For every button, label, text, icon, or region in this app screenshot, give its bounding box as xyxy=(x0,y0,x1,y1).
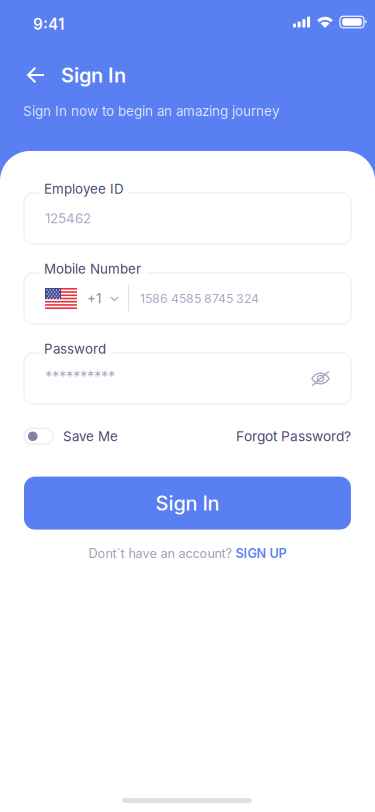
staticText: 9:41 xyxy=(33,15,64,34)
staticText: Password xyxy=(44,341,106,357)
staticText: +1 xyxy=(87,290,101,306)
staticText: Sign In xyxy=(61,63,126,87)
button[interactable]: Save Me xyxy=(24,428,118,444)
staticText: Save Me xyxy=(63,428,118,444)
staticText: SIGN UP xyxy=(235,546,286,561)
staticText: ********** xyxy=(45,368,115,385)
staticText: Mobile Number xyxy=(44,261,141,277)
staticText: Sign In now to begin an amazing journey xyxy=(23,103,279,119)
staticText: Sign In xyxy=(155,491,219,515)
button[interactable]: Sign In xyxy=(24,477,351,530)
button[interactable]: Back xyxy=(21,60,51,90)
button[interactable]: Show password xyxy=(311,370,330,387)
staticText: Dont`t have an account? xyxy=(88,546,231,561)
staticText: 1586 4585 8745 324 xyxy=(140,291,259,306)
staticText: 125462 xyxy=(45,210,91,226)
staticText: Employee ID xyxy=(44,181,124,197)
button[interactable]: SIGN UP xyxy=(235,546,286,561)
staticText: Forgot Password? xyxy=(236,428,351,445)
button[interactable]: Forgot Password? xyxy=(236,428,351,445)
